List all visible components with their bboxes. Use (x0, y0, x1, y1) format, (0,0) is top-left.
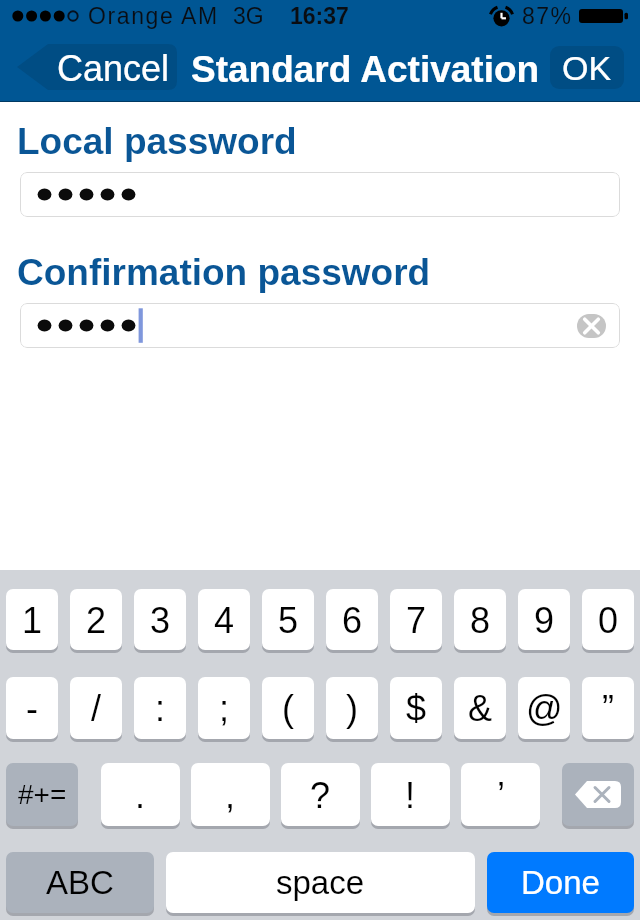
staticText: Cancel (57, 48, 170, 88)
button[interactable]: 9 (518, 589, 570, 650)
button[interactable]: ! (371, 763, 450, 826)
staticText: ? (310, 775, 331, 815)
staticText: 1 (22, 600, 43, 640)
button[interactable]: ABC (6, 852, 154, 913)
button[interactable]: space (166, 852, 475, 913)
staticText: 7 (406, 600, 427, 640)
button[interactable]: Backspace (562, 763, 634, 826)
staticText: : (155, 688, 166, 728)
staticText: @ (526, 688, 563, 728)
button[interactable]: ” (582, 677, 634, 739)
staticText: 2 (86, 600, 107, 640)
button[interactable]: 7 (390, 589, 442, 650)
button[interactable]: 5 (262, 589, 314, 650)
staticText: ( (282, 688, 294, 728)
staticText: Orange AM (88, 3, 219, 29)
button[interactable]: 6 (326, 589, 378, 650)
staticText: Standard Activation (191, 49, 540, 90)
staticText: ” (602, 688, 614, 728)
button[interactable]: Clear text (20, 303, 620, 348)
staticText: ! (405, 775, 416, 815)
staticText: ; (219, 688, 230, 728)
button[interactable]: 0 (582, 589, 634, 650)
button[interactable]: , (191, 763, 270, 826)
staticText: - (26, 688, 38, 728)
button[interactable]: 4 (198, 589, 250, 650)
button[interactable]: #+= (6, 763, 78, 826)
staticText: , (225, 775, 236, 815)
button[interactable]: Done (487, 852, 634, 913)
staticText: . (135, 775, 146, 815)
button[interactable]: : (134, 677, 186, 739)
staticText: 0 (598, 600, 619, 640)
button[interactable] (20, 172, 620, 217)
staticText: 6 (342, 600, 363, 640)
staticText: 16:37 (290, 3, 349, 29)
button[interactable]: 2 (70, 589, 122, 650)
staticText: Local password (17, 121, 297, 162)
staticText: 87% (522, 3, 573, 29)
staticText: & (468, 688, 493, 728)
button[interactable]: 8 (454, 589, 506, 650)
button[interactable]: ? (281, 763, 360, 826)
staticText: 9 (534, 600, 555, 640)
button[interactable]: & (454, 677, 506, 739)
staticText: ABC (46, 864, 114, 901)
button[interactable]: ( (262, 677, 314, 739)
staticText: 5 (278, 600, 299, 640)
button[interactable]: OK (550, 46, 624, 89)
staticText: 8 (470, 600, 491, 640)
button[interactable]: . (101, 763, 180, 826)
button[interactable]: / (70, 677, 122, 739)
button[interactable]: ; (198, 677, 250, 739)
button[interactable]: 3 (134, 589, 186, 650)
staticText: / (91, 688, 102, 728)
button[interactable]: @ (518, 677, 570, 739)
button[interactable]: Clear text (577, 314, 606, 338)
staticText: ’ (497, 775, 505, 815)
button[interactable]: ’ (461, 763, 540, 826)
staticText: ) (346, 688, 358, 728)
staticText: OK (562, 49, 612, 87)
staticText: 4 (214, 600, 235, 640)
staticText: 3 (150, 600, 171, 640)
staticText: Confirmation password (17, 252, 431, 293)
staticText: 3G (233, 3, 264, 29)
staticText: $ (406, 688, 427, 728)
button[interactable]: $ (390, 677, 442, 739)
button[interactable]: - (6, 677, 58, 739)
button[interactable]: Cancel (17, 44, 177, 90)
button[interactable]: ) (326, 677, 378, 739)
staticText: #+= (18, 779, 67, 810)
staticText: space (276, 864, 365, 901)
staticText: Done (521, 864, 600, 901)
button[interactable]: 1 (6, 589, 58, 650)
